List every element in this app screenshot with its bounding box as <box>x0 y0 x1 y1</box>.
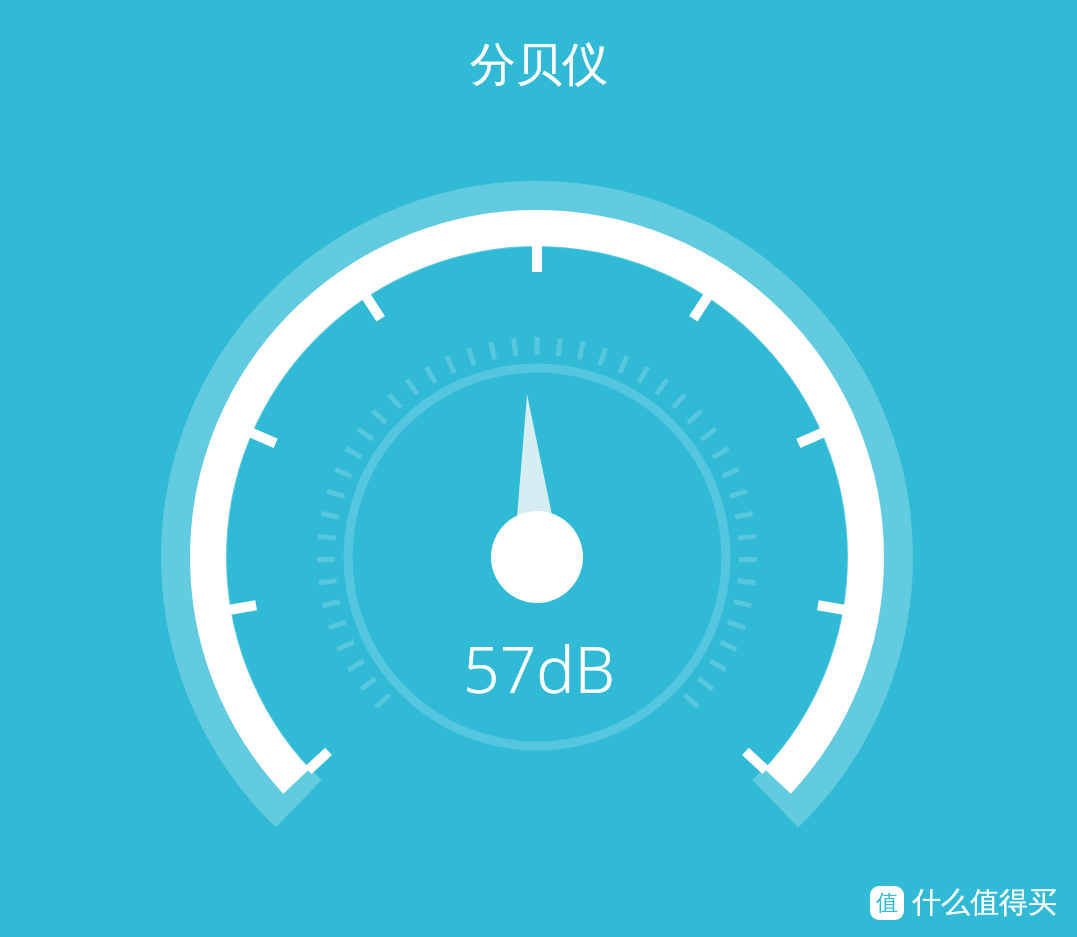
button[interactable]: 分贝仪 <box>470 36 608 94</box>
button[interactable]: 57dB <box>463 625 615 712</box>
staticText: 什么值得买 <box>912 884 1057 921</box>
button[interactable]: 什么值得买 <box>870 884 1057 921</box>
staticText: 值 <box>876 889 898 917</box>
